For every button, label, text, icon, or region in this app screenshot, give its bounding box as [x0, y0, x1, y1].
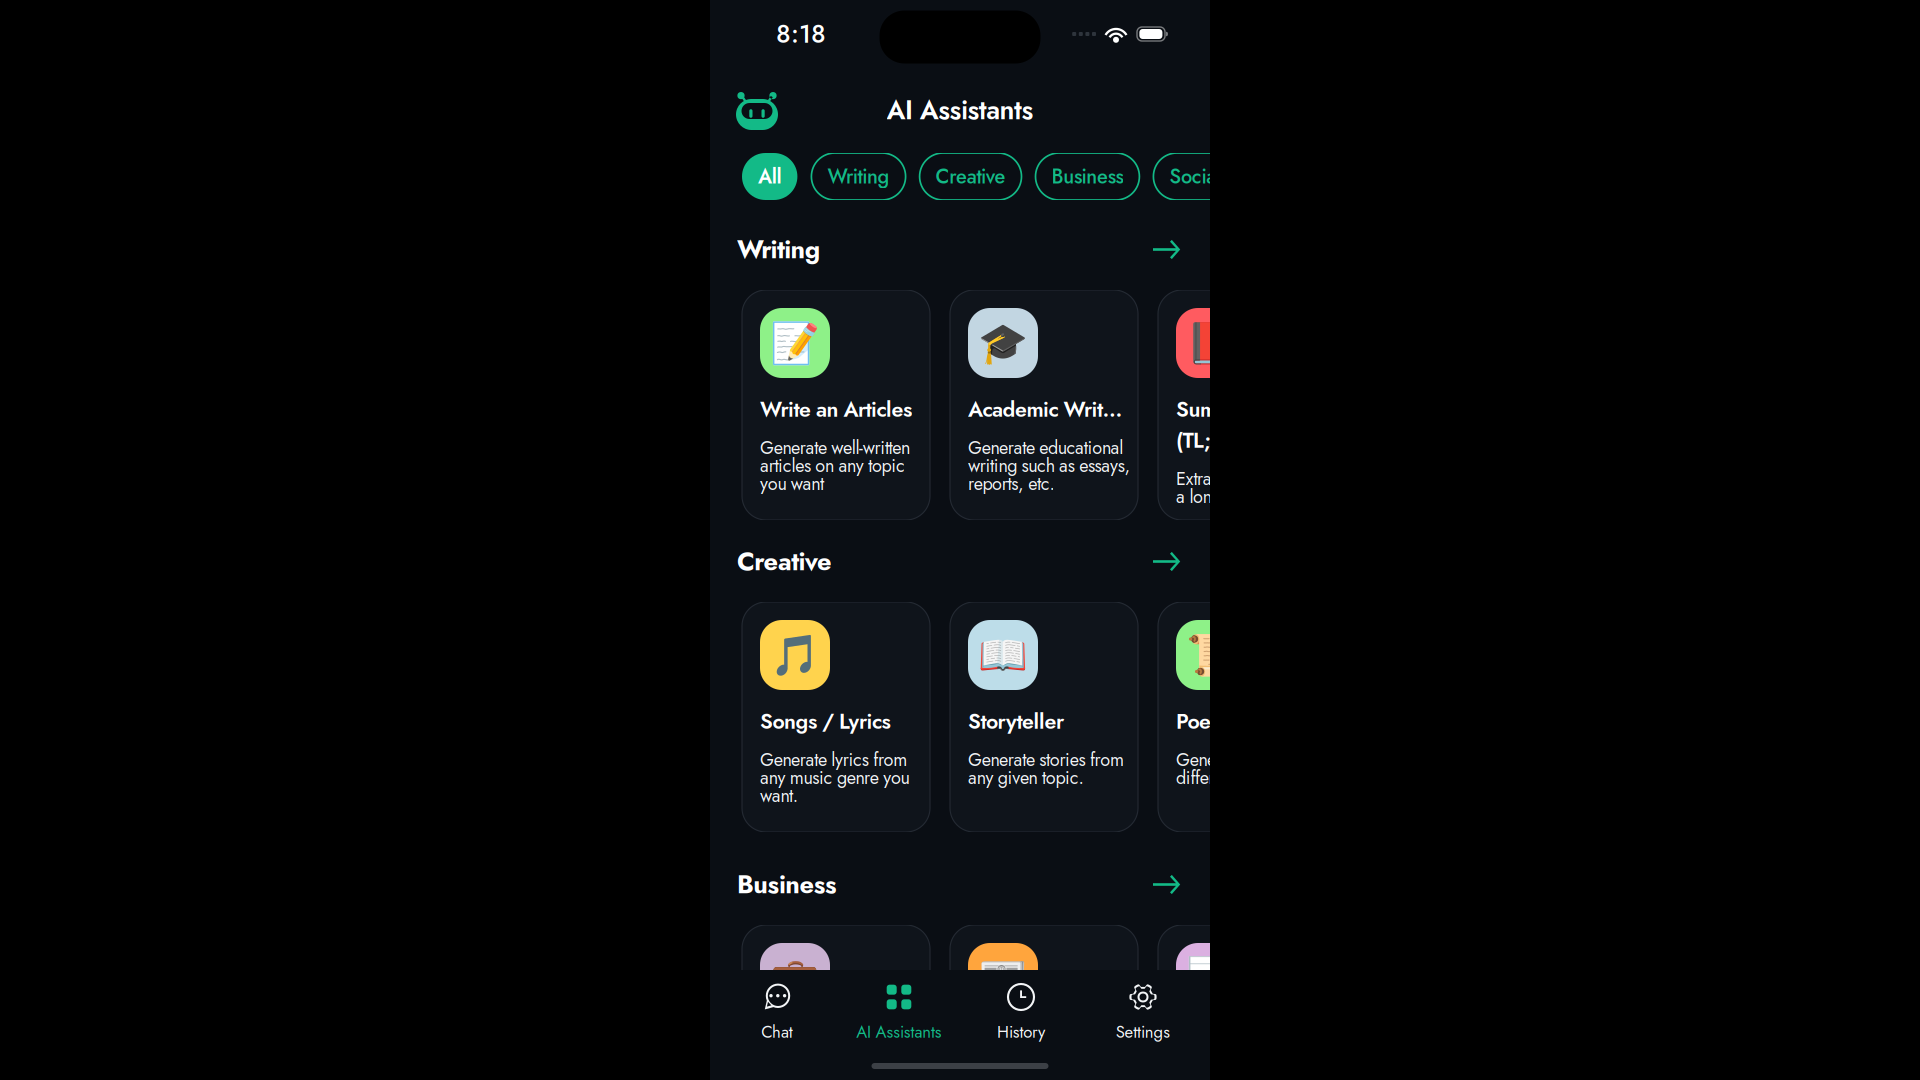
button[interactable]: Business Plan	[742, 925, 930, 1080]
button[interactable]: Creative	[920, 153, 1021, 200]
staticText: Business Plan	[760, 1029, 884, 1060]
button[interactable]: Settings	[1082, 983, 1204, 1045]
staticText: AI Assistants	[856, 1020, 942, 1044]
staticText: 📰	[978, 955, 1028, 1001]
staticText: Generate business reports.	[1176, 1070, 1308, 1080]
button[interactable]: All	[742, 153, 797, 200]
staticText: Summarize (TL;DR)	[1176, 394, 1278, 456]
staticText: 📊	[1186, 955, 1236, 1001]
staticText: AI Assistants	[887, 91, 1033, 129]
button[interactable]: Press Release	[950, 925, 1138, 1080]
button[interactable]: Poems	[1158, 602, 1346, 832]
button[interactable]: Write an Articles	[742, 290, 930, 520]
staticText: 🎓	[978, 320, 1028, 366]
staticText: Poems	[1176, 706, 1236, 737]
staticText: Write an Articles	[760, 394, 912, 425]
staticText: Business	[1051, 162, 1123, 191]
staticText: Songs / Lyrics	[760, 706, 890, 737]
staticText: 📝	[770, 320, 820, 366]
staticText: 💼	[770, 955, 820, 1001]
button[interactable]: See all Creative	[1150, 548, 1184, 574]
staticText: Generate stories from any given topic.	[968, 747, 1124, 791]
button[interactable]: Summarize (TL;DR)	[1158, 290, 1346, 520]
button[interactable]: Chat	[716, 983, 838, 1045]
staticText: Writing	[827, 162, 890, 191]
staticText: Reports	[1176, 1029, 1246, 1060]
staticText: 📖	[978, 632, 1028, 678]
staticText: Press Release	[968, 1029, 1093, 1060]
staticText: 8:18	[776, 16, 826, 52]
button[interactable]: AI Assistants	[838, 983, 960, 1045]
button[interactable]: Songs / Lyrics	[742, 602, 930, 832]
staticText: Business	[737, 866, 837, 903]
staticText: Academic Writ...	[968, 394, 1122, 425]
staticText: Chat	[761, 1020, 793, 1044]
button[interactable]: Social Media	[1153, 153, 1296, 200]
staticText: Generate lyrics from any music genre you…	[760, 747, 910, 809]
staticText: History	[997, 1020, 1045, 1044]
button[interactable]: Writing	[811, 153, 906, 200]
staticText: Extract key points from a long text	[1176, 466, 1339, 510]
button[interactable]: Reports	[1158, 925, 1346, 1080]
button[interactable]: Storyteller	[950, 602, 1138, 832]
staticText: Creative	[737, 543, 832, 580]
button[interactable]: Academic Writ...	[950, 290, 1138, 520]
staticText: 📜	[1186, 632, 1236, 678]
button[interactable]: See all Business	[1150, 871, 1184, 897]
button[interactable]: See all Writing	[1150, 236, 1184, 262]
button[interactable]: Business	[1035, 153, 1139, 200]
button[interactable]: History	[960, 983, 1082, 1045]
staticText: All	[758, 162, 781, 191]
staticText: Generate educational writing such as ess…	[968, 435, 1130, 497]
staticText: Writing	[737, 231, 820, 268]
staticText: Social Media	[1169, 162, 1280, 191]
staticText: Generate poems in different styles.	[1176, 747, 1314, 791]
staticText: 📕	[1186, 320, 1236, 366]
staticText: Creative	[936, 162, 1005, 191]
staticText: Storyteller	[968, 706, 1064, 737]
staticText: Generate well-written articles on any to…	[760, 435, 910, 497]
staticText: Settings	[1116, 1020, 1170, 1044]
staticText: 🎵	[770, 632, 820, 678]
button[interactable]: Assistant home	[732, 90, 782, 130]
